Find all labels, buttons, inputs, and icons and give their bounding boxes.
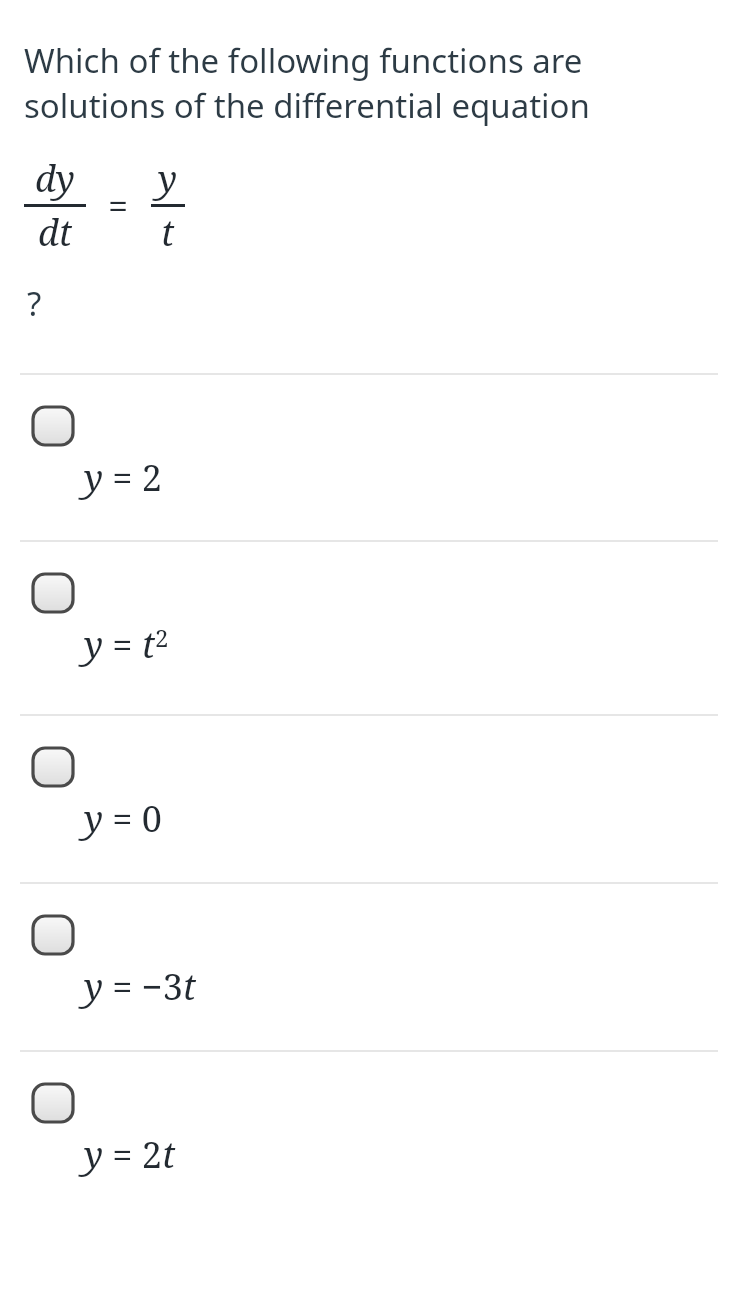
staticText: Which of the following functions are <box>24 38 583 83</box>
button[interactable]: Select y = 0 <box>31 746 75 788</box>
staticText: y = 2t <box>84 1130 176 1179</box>
button[interactable]: Select y = 2 t <box>0 1050 749 1215</box>
button[interactable]: Select y = 2 <box>31 405 75 447</box>
staticText: solutions of the differential equation <box>24 83 590 128</box>
button[interactable]: Select y = 0 <box>0 714 749 882</box>
staticText: y = 2 <box>84 453 162 502</box>
staticText: dy <box>35 154 75 203</box>
button[interactable]: Select y = 2 <box>0 373 749 540</box>
staticText: t <box>161 208 175 257</box>
button[interactable]: Select y = 2 t <box>31 1082 75 1124</box>
button[interactable]: Select y = t squared <box>0 540 749 714</box>
staticText: y = −3t <box>84 962 197 1011</box>
staticText: y = t2 <box>84 620 169 669</box>
staticText: = <box>108 181 129 230</box>
staticText: dt <box>38 208 73 257</box>
button[interactable]: Select y = minus 3 t <box>31 914 75 956</box>
staticText: ? <box>27 281 42 326</box>
staticText: y <box>158 154 178 203</box>
button[interactable]: Select y = minus 3 t <box>0 882 749 1050</box>
button[interactable]: Select y = t squared <box>31 572 75 614</box>
staticText: y = 0 <box>84 794 162 843</box>
